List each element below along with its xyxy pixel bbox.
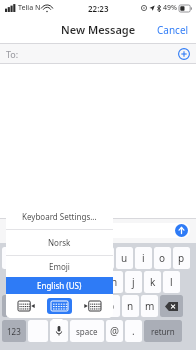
- staticText: return: [151, 326, 175, 337]
- staticText: q: [7, 251, 14, 265]
- staticText: d: [54, 275, 61, 289]
- button[interactable]: @: [106, 320, 123, 342]
- button[interactable]: u: [116, 247, 133, 269]
- button[interactable]: d: [49, 271, 66, 293]
- button[interactable]: w: [21, 247, 38, 269]
- staticText: Emoji: [49, 261, 70, 272]
- staticText: r: [65, 251, 70, 265]
- button[interactable]: q: [2, 247, 19, 269]
- staticText: space: [76, 326, 98, 337]
- button[interactable]: n: [122, 295, 139, 317]
- staticText: Norsk: [48, 237, 71, 248]
- staticText: a: [17, 275, 23, 289]
- staticText: .: [132, 324, 135, 338]
- staticText: n: [127, 299, 134, 313]
- button[interactable]: x: [46, 295, 63, 317]
- button[interactable]: r: [59, 247, 76, 269]
- staticText: f: [75, 275, 79, 289]
- staticText: i: [142, 251, 145, 265]
- button[interactable]: Add contact: [178, 48, 190, 60]
- button[interactable]: English (US): [6, 277, 113, 294]
- button[interactable]: f: [68, 271, 85, 293]
- button[interactable]: z: [27, 295, 44, 317]
- button[interactable]: l: [163, 271, 180, 293]
- staticText: o: [159, 251, 166, 265]
- button[interactable]: Keyboard layout 1: [14, 298, 39, 314]
- button[interactable]: v: [84, 295, 101, 317]
- button[interactable]: g: [87, 271, 104, 293]
- staticText: 123: [7, 326, 21, 337]
- staticText: u: [121, 251, 128, 265]
- button[interactable]: p: [173, 247, 190, 269]
- button[interactable]: Dictate: [50, 320, 68, 342]
- staticText: Cancel: [157, 23, 189, 37]
- staticText: Telia N: [18, 3, 41, 13]
- button[interactable]: b: [103, 295, 120, 317]
- button[interactable]: s: [30, 271, 47, 293]
- staticText: x: [52, 299, 58, 313]
- button[interactable]: return: [144, 320, 182, 342]
- button[interactable]: c: [65, 295, 82, 317]
- button[interactable]: Cancel: [150, 18, 196, 42]
- button[interactable]: Shift: [2, 295, 25, 317]
- button[interactable]: Keyboard layout 2: [47, 298, 72, 314]
- button[interactable]: .: [125, 320, 142, 342]
- button[interactable]: Keyboard Settings...: [6, 203, 113, 229]
- staticText: h: [111, 275, 118, 289]
- button[interactable]: Backspace: [160, 295, 183, 317]
- button[interactable]: 123: [2, 320, 26, 342]
- staticText: z: [33, 299, 38, 313]
- staticText: e: [46, 251, 52, 265]
- staticText: l: [170, 275, 173, 289]
- staticText: t: [85, 251, 89, 265]
- staticText: w: [26, 251, 34, 265]
- staticText: English (US): [37, 280, 82, 291]
- button[interactable]: a: [11, 271, 28, 293]
- staticText: b: [108, 299, 115, 313]
- staticText: m: [145, 299, 155, 313]
- button[interactable]: Norsk: [6, 230, 113, 255]
- staticText: 49%: [163, 3, 177, 13]
- button[interactable]: space: [70, 320, 104, 342]
- button[interactable]: Emoji: [28, 320, 48, 342]
- button[interactable]: j: [125, 271, 142, 293]
- staticText: c: [71, 299, 76, 313]
- button[interactable]: Emoji: [6, 256, 113, 277]
- staticText: @: [110, 324, 119, 338]
- button[interactable]: Keyboard layout 3: [80, 298, 105, 314]
- staticText: New Message: [61, 22, 136, 37]
- staticText: s: [36, 275, 41, 289]
- button[interactable]: k: [144, 271, 161, 293]
- button[interactable]: t: [78, 247, 95, 269]
- button[interactable]: o: [154, 247, 171, 269]
- button[interactable]: e: [40, 247, 57, 269]
- staticText: k: [150, 275, 156, 289]
- button[interactable]: Send: [175, 224, 188, 237]
- button[interactable]: i: [135, 247, 152, 269]
- button[interactable]: y: [97, 247, 114, 269]
- staticText: y: [103, 251, 109, 265]
- staticText: j: [132, 275, 135, 289]
- button[interactable]: [6, 223, 190, 238]
- staticText: v: [90, 299, 96, 313]
- button[interactable]: m: [141, 295, 158, 317]
- staticText: 22:23: [88, 3, 109, 14]
- button[interactable]: h: [106, 271, 123, 293]
- staticText: To:: [6, 48, 19, 60]
- staticText: g: [92, 275, 99, 289]
- staticText: p: [178, 251, 185, 265]
- staticText: Keyboard Settings...: [22, 211, 97, 222]
